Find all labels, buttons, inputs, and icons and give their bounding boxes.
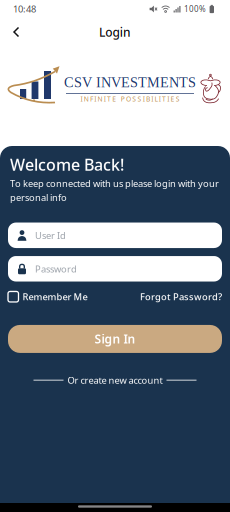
- staticText: Password: [35, 263, 77, 275]
- button[interactable]: User Id: [0, 222, 222, 248]
- staticText: User Id: [35, 229, 66, 241]
- staticText: INFINITE POSSIBILITIES: [80, 94, 180, 103]
- button[interactable]: Or create new account: [0, 374, 230, 386]
- button[interactable]: Remember Me: [8, 290, 87, 303]
- staticText: personal info: [10, 191, 67, 203]
- staticText: Welcome Back!: [10, 154, 124, 175]
- staticText: Forgot Password?: [140, 290, 222, 303]
- button[interactable]: Forgot Password?: [140, 290, 222, 303]
- staticText: 100%: [184, 4, 206, 14]
- staticText: Login: [99, 24, 131, 40]
- staticText: Remember Me: [22, 290, 87, 303]
- staticText: Sign In: [94, 331, 135, 347]
- staticText: CSV INVESTMENTS: [64, 74, 196, 90]
- button[interactable]: Back: [0, 20, 21, 43]
- button[interactable]: Sign In: [0, 325, 222, 353]
- button[interactable]: Password: [0, 256, 222, 281]
- staticText: 10:48: [13, 3, 36, 15]
- staticText: Or create new account: [67, 374, 162, 386]
- staticText: To keep connected with us please login w…: [10, 177, 219, 190]
